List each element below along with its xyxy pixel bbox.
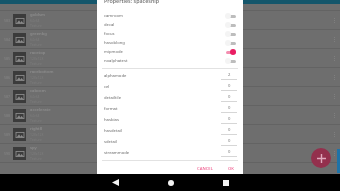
button[interactable]: sdetail (97, 136, 243, 147)
button[interactable]: OK (225, 164, 237, 174)
staticText: 587 (4, 94, 13, 99)
button[interactable]: detailtile (97, 92, 243, 103)
staticText: 0 (228, 127, 231, 133)
staticText: 0 (228, 105, 231, 111)
staticText: OK (228, 166, 234, 172)
staticText: format (104, 106, 221, 112)
staticText: noalphatest (104, 58, 225, 64)
button[interactable]: hasdetail (97, 125, 243, 136)
staticText: 2 (228, 72, 231, 78)
staticText: 584 (4, 37, 13, 42)
staticText: cabcom (30, 88, 46, 94)
button[interactable]: Recents (198, 174, 253, 191)
staticText: CANCEL (197, 166, 213, 172)
staticText: camroom (104, 13, 225, 19)
staticText: hasoblong (104, 40, 225, 46)
staticText: racebottom (30, 69, 54, 75)
button[interactable]: 585 (0, 49, 340, 67)
button[interactable]: More options (328, 144, 340, 162)
button[interactable]: decal (97, 20, 243, 29)
staticText: Properties: spaceship (104, 0, 160, 4)
button[interactable]: focus (97, 29, 243, 38)
button[interactable]: alphamode (97, 70, 243, 81)
staticText: mipmode (104, 49, 225, 55)
staticText: 589 (4, 132, 13, 137)
button[interactable]: format (97, 103, 243, 114)
button[interactable]: camroom (97, 11, 243, 20)
staticText: 585 (4, 56, 13, 61)
button[interactable]: CANCEL (194, 164, 216, 174)
staticText: decal (104, 22, 225, 28)
staticText: spy (30, 145, 37, 151)
staticText: 590 (4, 151, 13, 156)
staticText: streammode (104, 150, 221, 156)
button[interactable]: hasoblong (97, 38, 243, 47)
staticText: hasbias (104, 117, 221, 123)
staticText: alphamode (104, 73, 221, 79)
staticText: accelerate (30, 107, 51, 113)
staticText: racetop (30, 50, 46, 56)
button[interactable]: 584 (0, 30, 340, 48)
staticText: 0 (228, 116, 231, 122)
button[interactable]: streammode (97, 147, 243, 158)
button[interactable]: hasbias (97, 114, 243, 125)
staticText: 0 (228, 138, 231, 144)
button[interactable]: Back (88, 174, 143, 191)
staticText: 0 (228, 149, 231, 155)
staticText: 583 (4, 18, 13, 23)
button[interactable]: 587 (0, 87, 340, 105)
staticText: cel (104, 84, 221, 90)
button[interactable]: 590 (0, 144, 340, 162)
button[interactable]: noalphatest (97, 56, 243, 65)
button[interactable]: 589 (0, 125, 340, 143)
staticText: detailtile (104, 95, 221, 101)
staticText: 586 (4, 75, 13, 80)
staticText: 0 (228, 94, 231, 100)
staticText: hasdetail (104, 128, 221, 134)
button[interactable]: 583 (0, 11, 340, 29)
staticText: sdetail (104, 139, 221, 145)
staticText: goldsm (30, 12, 45, 18)
staticText: greenbg (30, 31, 47, 37)
button[interactable]: mipmode (97, 47, 243, 56)
button[interactable]: 588 (0, 106, 340, 124)
button[interactable]: cel (97, 81, 243, 92)
button[interactable]: 586 (0, 68, 340, 86)
staticText: focus (104, 31, 225, 37)
button[interactable]: Home (143, 174, 198, 191)
button[interactable]: Add (311, 148, 331, 168)
staticText: 588 (4, 113, 13, 118)
staticText: right8 (30, 126, 43, 132)
staticText: 0 (228, 83, 231, 89)
